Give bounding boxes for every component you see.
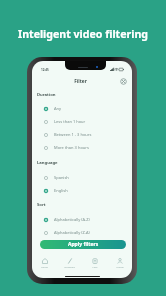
button[interactable]: Any xyxy=(37,102,129,115)
staticText: Surgeries xyxy=(64,265,75,268)
staticText: More than 3 hours xyxy=(54,145,89,150)
button[interactable]: Profile xyxy=(107,257,132,268)
button[interactable]: English xyxy=(37,184,129,197)
button[interactable]: Alphabetically (Z-A) xyxy=(37,226,129,239)
staticText: Language xyxy=(37,160,58,166)
button[interactable]: Home xyxy=(32,257,57,268)
staticText: Lists xyxy=(92,265,98,268)
button[interactable]: Lists xyxy=(82,257,107,268)
staticText: Less than 1 hour xyxy=(54,119,86,124)
staticText: Any xyxy=(54,106,62,111)
staticText: English xyxy=(54,188,68,193)
button[interactable]: More than 3 hours xyxy=(37,141,129,154)
staticText: Between 1 - 3 hours xyxy=(54,132,92,137)
button[interactable]: Surgeries xyxy=(57,257,82,268)
staticText: Alphabetically (Z-A) xyxy=(54,230,90,235)
staticText: Filter xyxy=(74,78,87,85)
button[interactable]: Spanish xyxy=(37,171,129,184)
staticText: Home xyxy=(41,265,48,268)
button[interactable]: Close xyxy=(120,78,127,85)
staticText: Spanish xyxy=(54,175,69,180)
button[interactable]: Less than 1 hour xyxy=(37,115,129,128)
staticText: Inteligent video filtering xyxy=(0,27,166,41)
button[interactable]: Alphabetically (A-Z) xyxy=(37,213,129,226)
staticText: 12:45 xyxy=(41,68,49,72)
staticText: Duration xyxy=(37,92,56,98)
button[interactable]: Apply filters xyxy=(40,240,126,249)
staticText: Alphabetically (A-Z) xyxy=(54,217,90,222)
staticText: Profile xyxy=(116,265,124,268)
staticText: Apply filters xyxy=(68,241,99,248)
staticText: Sort xyxy=(37,202,46,208)
button[interactable]: Between 1 - 3 hours xyxy=(37,128,129,141)
